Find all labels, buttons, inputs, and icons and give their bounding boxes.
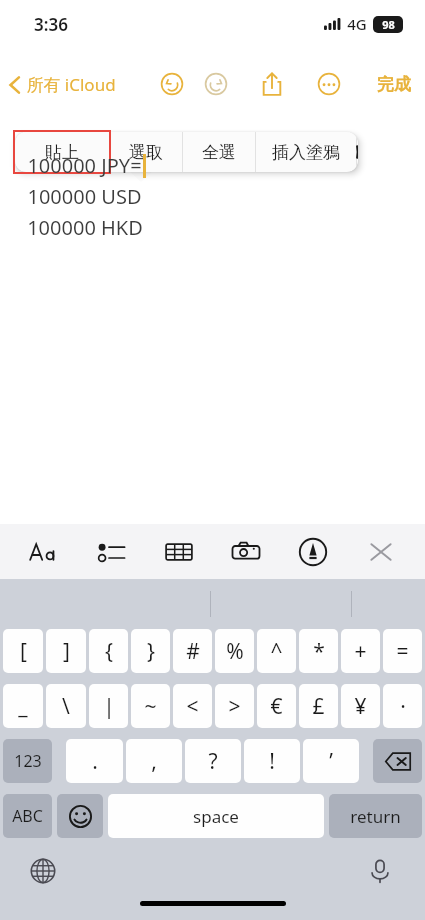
button[interactable]: < [173,684,212,728]
button[interactable]: ~ [131,684,170,728]
button[interactable]: More menu items [357,132,358,172]
button[interactable]: Text formatting [21,529,67,575]
staticText: % [226,637,244,666]
staticText: # [186,637,200,666]
staticText: * [313,637,325,666]
button[interactable]: * [299,629,338,673]
button[interactable]: ’ [303,739,359,783]
staticText: ! [269,747,275,776]
staticText: 100000 USD [27,183,142,210]
button[interactable]: 所有 iCloud [8,73,116,96]
staticText: ? [208,747,218,776]
staticText: \ [62,692,70,721]
button[interactable]: € [257,684,296,728]
button[interactable]: Undo [155,67,189,101]
button[interactable]: Change keyboard language [26,854,60,888]
button[interactable]: Checklist [89,529,135,575]
staticText: 4G [347,14,367,34]
staticText: > [228,692,241,721]
button[interactable]: ¥ [341,684,380,728]
button[interactable]: } [131,629,170,673]
staticText: 貼上 [45,142,79,163]
staticText: ABC [12,805,43,827]
staticText: 所有 iCloud [26,73,116,96]
button[interactable]: 插入塗鴉 [256,132,356,172]
button[interactable]: , [126,739,182,783]
staticText: { [105,637,113,666]
button[interactable]: = [383,629,422,673]
button[interactable]: £ [299,684,338,728]
staticText: [ [20,637,27,666]
button[interactable]: Markup [290,529,336,575]
button[interactable]: space [108,794,324,838]
staticText: 123 [14,750,42,772]
button[interactable]: ? [185,739,241,783]
staticText: £ [312,692,325,721]
button[interactable]: Share [255,67,289,101]
button[interactable]: \ [46,684,86,728]
staticText: ] [63,637,70,666]
button[interactable]: Dictation [363,854,397,888]
button[interactable]: Table [156,529,202,575]
button[interactable]: ] [46,629,86,673]
button[interactable]: Backspace [373,739,422,783]
staticText: ~ [144,692,157,721]
button[interactable]: ! [244,739,300,783]
staticText: + [354,637,367,666]
button[interactable]: Close keyboard [358,529,404,575]
button[interactable]: Camera [223,529,269,575]
button[interactable]: { [89,629,128,673]
staticText: 3:36 [34,13,68,36]
staticText: ^ [270,637,283,666]
staticText: € [270,692,283,721]
staticText: 100000 HKD [27,214,143,241]
button[interactable]: ABC [3,794,52,838]
staticText: 全選 [202,142,236,163]
staticText: } [147,637,155,666]
staticText: , [151,747,157,776]
button[interactable]: 全選 [183,132,255,172]
staticText: space [193,805,239,828]
button[interactable]: · [383,684,422,728]
button[interactable]: [ [3,629,43,673]
staticText: 100000 JPY= [27,152,142,179]
button[interactable]: 貼上 [15,132,109,172]
button[interactable]: Emoji [57,794,103,838]
staticText: . [92,747,98,776]
button[interactable]: . [66,739,123,783]
staticText: _ [18,692,28,721]
staticText: 98 [382,17,395,32]
staticText: ’ [329,747,333,776]
button[interactable]: return [329,794,422,838]
button[interactable]: | [89,684,128,728]
button[interactable]: % [215,629,254,673]
button[interactable]: _ [3,684,43,728]
button[interactable]: Redo [199,67,233,101]
staticText: = [396,637,409,666]
button[interactable]: 123 [3,739,52,783]
button[interactable]: + [341,629,380,673]
button[interactable]: More [312,67,346,101]
staticText: 選取 [129,142,163,163]
staticText: · [400,692,406,721]
button[interactable]: # [173,629,212,673]
staticText: | [103,692,115,721]
button[interactable]: 完成 [377,74,411,95]
staticText: 插入塗鴉 [272,142,340,163]
staticText: return [350,805,401,828]
button[interactable]: > [215,684,254,728]
button[interactable]: 選取 [110,132,182,172]
staticText: < [186,692,199,721]
staticText: ¥ [354,692,367,721]
button[interactable]: ^ [257,629,296,673]
